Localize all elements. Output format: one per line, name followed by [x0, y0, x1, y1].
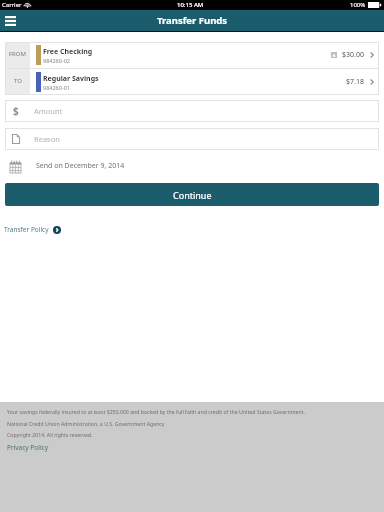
staticText: Free Checking [43, 47, 93, 57]
staticText: 984260-01 [43, 84, 70, 91]
button[interactable]: TO [5, 69, 379, 95]
staticText: Regular Savings [43, 74, 99, 84]
button[interactable]: $ [5, 100, 379, 122]
staticText: 984260-02 [43, 57, 70, 64]
button[interactable]: Menu [0, 11, 20, 31]
staticText: 100% [350, 1, 366, 9]
staticText: $7.18 [346, 77, 364, 87]
button[interactable]: FROM [5, 42, 379, 68]
staticText: Amount [34, 106, 63, 116]
staticText: Reason [34, 134, 60, 144]
staticText: Transfer Funds [157, 14, 228, 27]
staticText: Privacy Policy [7, 443, 49, 452]
staticText: $ [13, 104, 19, 118]
button[interactable]: Privacy Policy [7, 443, 49, 452]
button[interactable]: Reason [5, 128, 379, 150]
staticText: Transfer Policy [4, 225, 49, 234]
staticText: $30.00 [342, 50, 364, 60]
staticText: Continue [173, 189, 212, 201]
staticText: National Credit Union Administration, a … [7, 420, 165, 427]
button[interactable]: Continue [5, 183, 379, 206]
staticText: 10:15 AM [177, 1, 204, 9]
staticText: Send on December 9, 2014 [36, 161, 125, 171]
button[interactable]: Transfer Policy [4, 225, 61, 234]
staticText: Your savings federally insured to at lea… [7, 408, 305, 415]
staticText: Copyright 2014. All rights reserved. [7, 431, 93, 438]
staticText: TO [14, 77, 22, 85]
staticText: FROM [9, 50, 26, 58]
button[interactable]: Send on December 9, 2014 [10, 155, 384, 177]
staticText: Carrier [2, 1, 22, 9]
